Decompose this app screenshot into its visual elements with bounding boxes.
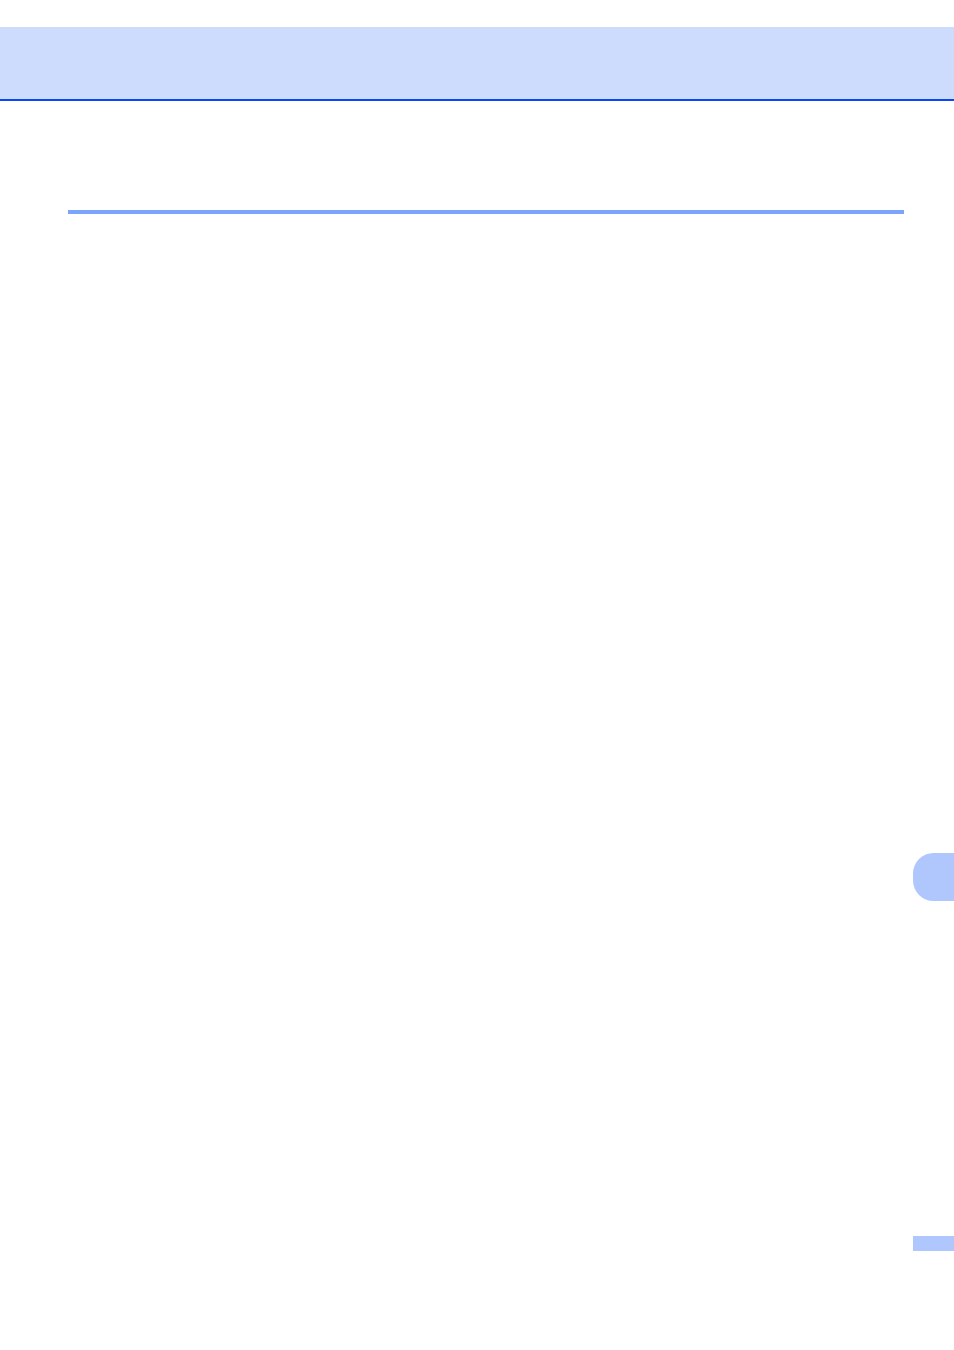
button[interactable]: Section index tab xyxy=(913,853,954,901)
